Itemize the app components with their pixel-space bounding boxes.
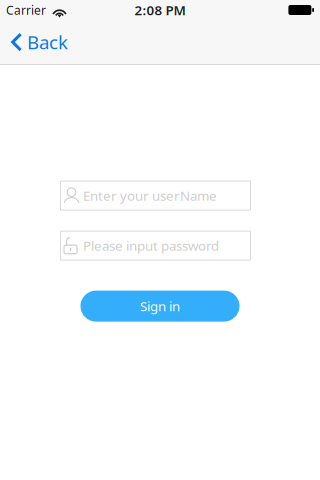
staticText: Sign in <box>140 297 180 315</box>
staticText: 2:08 PM <box>134 1 185 19</box>
staticText: Carrier <box>6 2 46 18</box>
button[interactable]: Sign in <box>80 291 239 322</box>
staticText: Enter your userName <box>83 187 217 204</box>
button[interactable]: Back <box>0 20 68 64</box>
staticText: Back <box>27 30 68 54</box>
staticText: Please input password <box>83 237 219 254</box>
